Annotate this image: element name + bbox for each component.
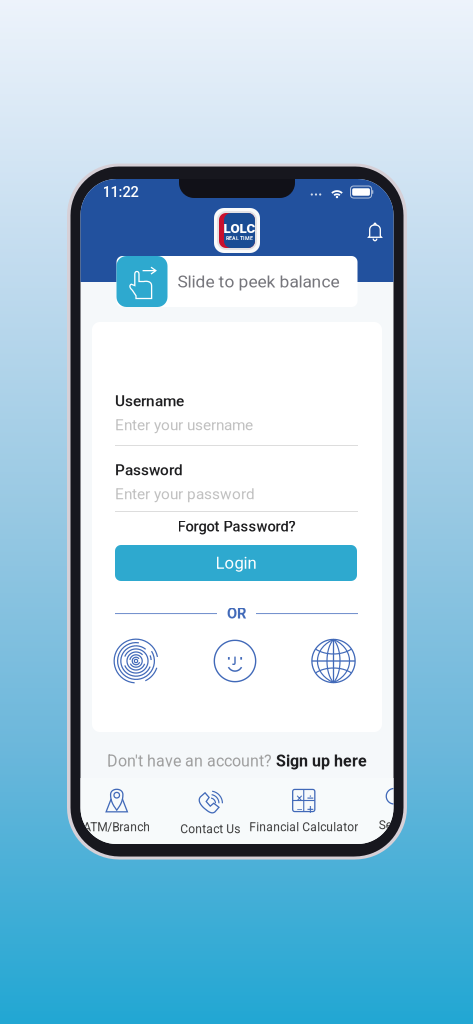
staticText: Search <box>379 818 416 832</box>
button[interactable]: Notifications <box>356 212 393 252</box>
button[interactable]: Don't have an account? <box>107 744 367 778</box>
button[interactable]: × <box>257 778 350 844</box>
staticText: − <box>296 803 303 817</box>
button[interactable]: Fingerprint login <box>113 638 159 684</box>
staticText: × <box>296 791 302 805</box>
button[interactable]: Face ID login <box>213 639 257 683</box>
button[interactable]: Forgot Password? <box>177 515 295 538</box>
staticText: Login <box>215 553 256 573</box>
staticText: 11:22 <box>102 183 138 201</box>
staticText: OR <box>227 605 246 622</box>
staticText: Sign up here <box>276 752 367 770</box>
button[interactable]: Search <box>350 778 444 844</box>
staticText: Forgot Password? <box>177 518 295 535</box>
staticText: Enter your username <box>115 416 253 434</box>
button[interactable]: Language <box>311 638 356 683</box>
button[interactable]: ATM/Branch <box>70 778 163 844</box>
button[interactable]: Contact Us <box>163 778 257 844</box>
button[interactable]: Login <box>115 545 357 581</box>
staticText: Contact Us <box>180 822 240 836</box>
staticText: REAL TIME <box>226 235 253 241</box>
staticText: Don't have an account? <box>107 752 272 770</box>
staticText: Slide to peek balance <box>177 271 339 292</box>
staticText: LOLC <box>223 221 255 236</box>
staticText: ATM/Branch <box>83 820 150 834</box>
staticText: Username <box>115 392 184 410</box>
button[interactable]: Slide to peek balance <box>116 256 357 307</box>
staticText: Password <box>115 461 183 479</box>
staticText: Financial Calculator <box>249 820 358 834</box>
staticText: Enter your password <box>115 485 255 503</box>
staticText: + <box>307 803 314 817</box>
staticText: ÷ <box>307 791 314 805</box>
